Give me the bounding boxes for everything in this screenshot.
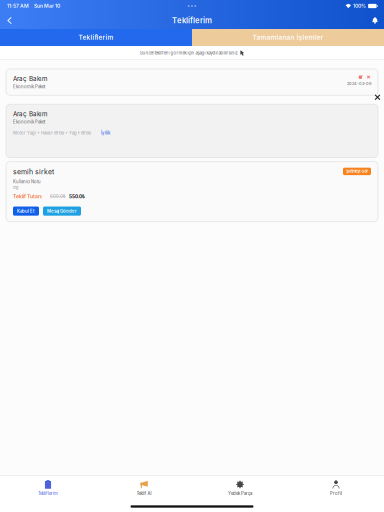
staticText: Tekliflerim [172, 16, 212, 25]
staticText: Kullanıcı Notu [13, 179, 41, 184]
staticText: Motor Yağı + Hava Filtresi + Yağ Filtres… [13, 130, 91, 136]
staticText: 11:57 AM [7, 3, 29, 9]
staticText: Güncel teklifleri görmek için aşağı kayd… [140, 50, 238, 56]
button[interactable]: İşletmeyi Gör [343, 168, 371, 175]
staticText: Tekliflerim [38, 491, 58, 496]
staticText: Mesaj Gönder [47, 208, 77, 214]
staticText: 2024-03-09 [347, 81, 371, 86]
button[interactable]: semih sirket [0, 162, 384, 222]
staticText: Tamamlanan İşlemler [252, 34, 323, 41]
staticText: İyilik [101, 130, 110, 136]
staticText: 600.0₺ [50, 194, 66, 199]
staticText: Sun Mar 10 [34, 3, 60, 9]
staticText: Ekonomik Paket [13, 84, 45, 89]
staticText: semih sirket [13, 168, 54, 176]
staticText: Teklif Tutarı: [13, 193, 43, 199]
staticText: 100% [353, 3, 366, 9]
button[interactable]: Araç Bakım [0, 104, 384, 158]
button[interactable]: Tekliflerim [0, 29, 192, 46]
staticText: Tekliflerim [78, 34, 113, 41]
button[interactable]: Profil [288, 475, 384, 501]
staticText: 550.0₺ [69, 194, 85, 199]
button[interactable]: İyilik [101, 130, 110, 136]
staticText: Kabul Et [17, 208, 35, 214]
staticText: mg [13, 185, 18, 190]
button[interactable]: Teklif Al [96, 475, 192, 501]
button[interactable]: Yedek Parça [192, 475, 288, 501]
button[interactable]: Mesaj Gönder [43, 206, 81, 216]
staticText: Yedek Parça [228, 491, 252, 496]
button[interactable]: Bildirimler [366, 12, 384, 29]
button[interactable]: Kabul Et [13, 206, 39, 216]
staticText: Araç Bakım [13, 110, 47, 118]
staticText: Araç Bakım [13, 75, 47, 83]
button[interactable]: Tamamlanan İşlemler [192, 29, 384, 46]
staticText: Ekonomik Paket [13, 119, 45, 124]
staticText: İşletmeyi Gör [345, 169, 368, 174]
staticText: Teklif Al [136, 491, 151, 496]
button[interactable]: Araç Bakım [0, 69, 384, 95]
button[interactable]: Geri [0, 12, 18, 29]
staticText: Profil [330, 491, 342, 496]
button[interactable]: Tekliflerim [0, 475, 96, 501]
button[interactable]: Kapat [371, 91, 383, 103]
